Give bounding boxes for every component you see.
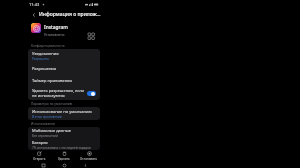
staticText: Информация о приложении xyxy=(39,11,102,18)
staticText: Удалить разрешения, если не используются xyxy=(32,88,85,98)
staticText: Уведомления xyxy=(32,51,59,56)
staticText: Instagram xyxy=(44,24,68,31)
button[interactable]: Мобильные данные xyxy=(28,127,100,139)
staticText: Разрешено xyxy=(32,57,49,61)
button[interactable]: Удалить разрешения, если не используются xyxy=(28,86,100,100)
staticText: Остановить xyxy=(80,157,98,161)
button[interactable]: Разрешения xyxy=(28,62,100,74)
button[interactable]: Удалить xyxy=(52,150,76,162)
staticText: Мобильные данные xyxy=(32,128,71,133)
staticText: Открыть xyxy=(33,157,46,161)
button[interactable]: Переключатель xyxy=(87,91,96,96)
staticText: Установлено xyxy=(44,32,65,36)
staticText: Параметры по умолчанию xyxy=(31,102,73,106)
button[interactable]: Батарея xyxy=(28,139,100,150)
button[interactable]: Назад xyxy=(29,10,38,19)
staticText: Батарея xyxy=(32,140,48,145)
button[interactable]: Использование по умолчанию xyxy=(28,107,100,120)
button[interactable]: Открыть xyxy=(27,150,51,162)
button[interactable]: Таймер приложения xyxy=(28,74,100,86)
button[interactable]: Назад xyxy=(81,162,89,168)
staticText: Использование по умолчанию xyxy=(32,109,92,114)
staticText: Использование xyxy=(31,122,56,126)
button[interactable]: Остановить xyxy=(77,150,101,162)
button[interactable]: Уведомления xyxy=(28,49,100,62)
staticText: Конфиденциальность xyxy=(31,44,65,48)
button[interactable]: Домой xyxy=(60,162,68,168)
staticText: 7% использовано с последней зарядки xyxy=(32,146,91,150)
staticText: Таймер приложения xyxy=(32,78,72,83)
button[interactable]: Последние приложения xyxy=(39,162,47,168)
staticText: Удалить xyxy=(58,157,70,161)
staticText: 11:43 xyxy=(29,2,40,7)
staticText: Разрешения xyxy=(32,66,57,71)
staticText: В этом приложении xyxy=(32,115,62,119)
button[interactable]: Виджеты xyxy=(86,31,96,41)
staticText: Без ограничений xyxy=(32,134,58,138)
